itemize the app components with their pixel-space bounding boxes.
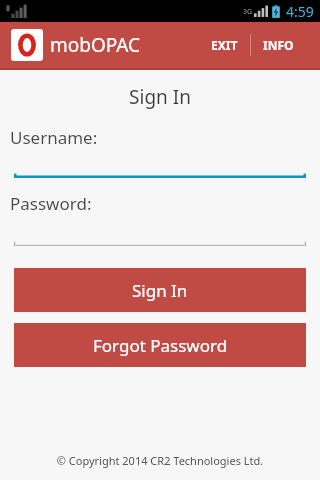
- staticText: Password:: [10, 192, 92, 215]
- staticText: 3G: [243, 7, 253, 17]
- staticText: mobOPAC: [50, 32, 141, 58]
- button[interactable]: Sign In: [14, 268, 306, 312]
- staticText: EXIT: [211, 37, 238, 53]
- button[interactable]: [14, 239, 306, 246]
- button[interactable]: EXIT: [199, 27, 250, 63]
- button[interactable]: Forgot Password: [14, 323, 306, 367]
- staticText: Sign In: [132, 279, 188, 302]
- staticText: Sign In: [0, 84, 320, 110]
- staticText: Username:: [10, 126, 98, 149]
- staticText: © Copyright 2014 CR2 Technologies Ltd.: [0, 453, 320, 468]
- button[interactable]: INFO: [251, 27, 306, 63]
- button[interactable]: [14, 171, 306, 178]
- staticText: Forgot Password: [93, 334, 228, 357]
- staticText: 4:59: [286, 2, 314, 21]
- staticText: INFO: [263, 37, 294, 53]
